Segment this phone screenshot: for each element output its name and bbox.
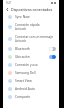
staticText: Conexión rápida bbox=[15, 23, 40, 27]
button[interactable]: Conexión y uso bbox=[3, 61, 59, 69]
button[interactable]: Sync Now bbox=[3, 13, 59, 21]
staticText: Bluetooth bbox=[15, 47, 30, 51]
button[interactable]: Android Auto bbox=[3, 85, 59, 93]
staticText: Ubicación bbox=[15, 55, 30, 59]
staticText: Conectar con un mensaje bbox=[15, 35, 54, 39]
staticText: 9:41 bbox=[6, 1, 12, 5]
button[interactable]: Toggle bbox=[49, 47, 56, 51]
button[interactable]: Conexión rápida bbox=[3, 21, 59, 33]
staticText: Compartir bbox=[15, 95, 31, 99]
staticText: Sync Now bbox=[15, 15, 30, 19]
button[interactable]: Toggle bbox=[49, 55, 56, 59]
button[interactable]: Ubicación bbox=[3, 53, 59, 61]
button[interactable]: Conectar con un mensaje bbox=[3, 33, 59, 45]
staticText: Android Auto bbox=[15, 87, 35, 91]
button[interactable]: Samsung DeX bbox=[3, 69, 59, 77]
staticText: Activado bbox=[15, 39, 27, 43]
staticText: Samsung DeX bbox=[15, 71, 36, 75]
staticText: Conexión y uso bbox=[15, 63, 38, 67]
staticText: Activado bbox=[15, 27, 27, 31]
button[interactable]: Bluetooth bbox=[3, 45, 59, 53]
button[interactable]: Smart View bbox=[3, 77, 59, 85]
staticText: Smart View bbox=[15, 79, 32, 83]
button[interactable]: Back bbox=[5, 7, 10, 12]
button[interactable]: Compartir bbox=[3, 93, 59, 101]
staticText: Dispositivos conectados bbox=[11, 7, 53, 12]
